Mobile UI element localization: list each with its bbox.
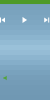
button[interactable]: Next	[40, 13, 50, 27]
button[interactable]: Previous	[0, 13, 10, 27]
button[interactable]: Play	[18, 13, 32, 27]
